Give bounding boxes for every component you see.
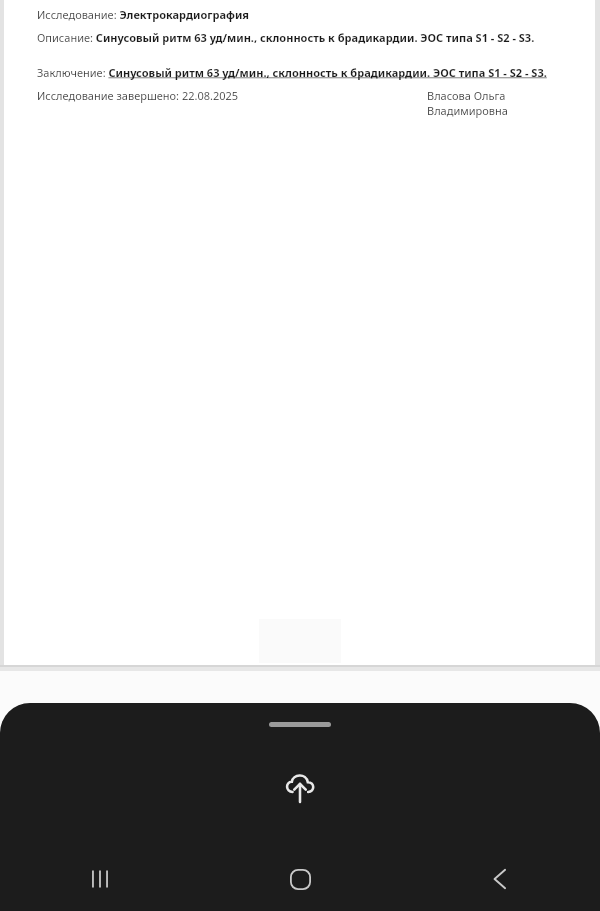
- staticText: Исследование: Электрокардиография: [37, 7, 249, 22]
- button[interactable]: Back: [400, 847, 600, 911]
- staticText: Заключение: Синусовый ритм 63 уд/мин., с…: [37, 65, 550, 80]
- staticText: Исследование завершено: 22.08.2025: [37, 88, 239, 103]
- staticText: Власова Ольга: [427, 88, 506, 103]
- staticText: Описание: Синусовый ритм 63 уд/мин., скл…: [37, 30, 535, 45]
- button[interactable]: Upload to cloud: [272, 763, 328, 819]
- staticText: Владимировна: [427, 103, 508, 118]
- button[interactable]: Home: [200, 847, 400, 911]
- button[interactable]: Recent apps: [0, 847, 200, 911]
